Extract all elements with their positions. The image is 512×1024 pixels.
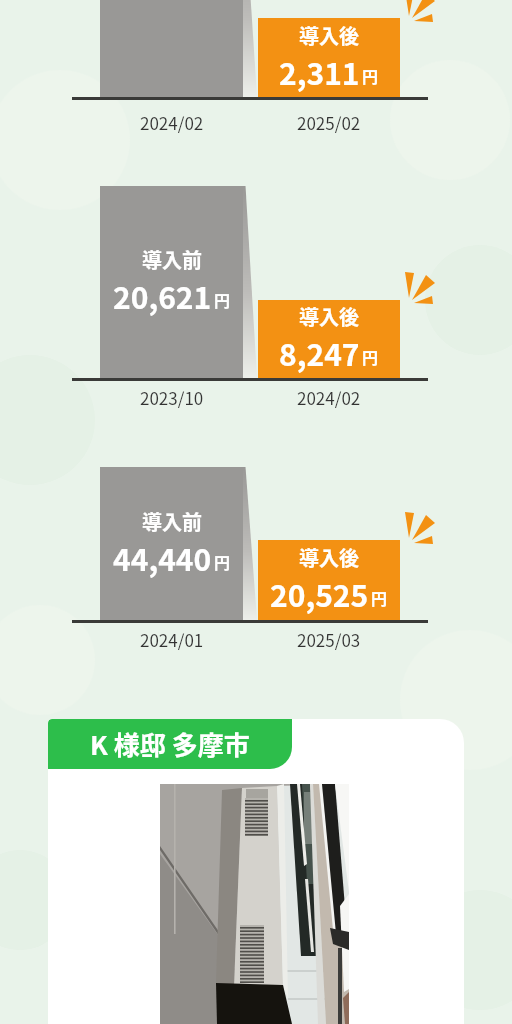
staticText: 20,621 — [113, 274, 212, 317]
staticText: 8,247 — [279, 331, 360, 374]
staticText: 導入後 — [299, 21, 359, 50]
staticText: 2024/02 — [140, 110, 204, 135]
staticText: 円 — [362, 64, 379, 87]
staticText: 2024/02 — [297, 385, 361, 410]
button[interactable]: K 様邸 多摩市 — [48, 719, 464, 1024]
staticText: 2025/03 — [297, 627, 361, 652]
staticText: 44,440 — [113, 536, 212, 579]
staticText: 2,311 — [279, 50, 360, 93]
staticText: K 様邸 多摩市 — [90, 725, 250, 763]
staticText: 2025/02 — [297, 110, 361, 135]
staticText: 円 — [362, 345, 379, 368]
staticText: 2024/01 — [140, 627, 204, 652]
staticText: 20,525 — [270, 572, 369, 615]
staticText: 円 — [371, 586, 388, 609]
staticText: 円 — [214, 288, 231, 311]
staticText: 導入後 — [299, 543, 359, 572]
staticText: 2023/10 — [140, 385, 204, 410]
staticText: 導入前 — [142, 507, 202, 536]
staticText: 円 — [214, 550, 231, 573]
staticText: 導入前 — [142, 245, 202, 274]
staticText: 導入後 — [299, 302, 359, 331]
